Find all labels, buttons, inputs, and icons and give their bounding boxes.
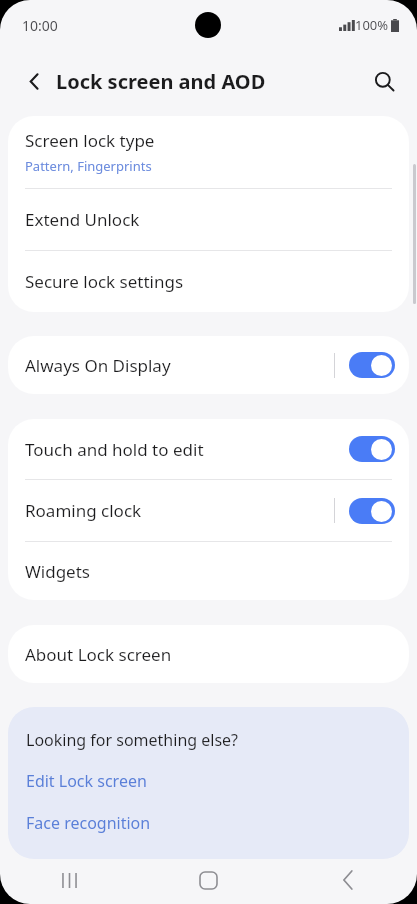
button[interactable]: Back <box>14 61 54 101</box>
staticText: Secure lock settings <box>25 270 184 293</box>
button[interactable]: Toggle <box>349 498 395 524</box>
button[interactable]: Toggle <box>349 436 395 462</box>
button[interactable]: Roaming clock <box>8 480 409 541</box>
staticText: Edit Lock screen <box>26 770 147 792</box>
staticText: Looking for something else? <box>26 729 239 751</box>
button[interactable]: Back <box>278 856 417 904</box>
button[interactable]: Recent apps <box>0 856 139 904</box>
button[interactable]: Screen lock type <box>8 116 409 188</box>
staticText: 100% <box>355 16 389 34</box>
button[interactable]: Toggle <box>349 352 395 378</box>
button[interactable]: Edit Lock screen <box>8 767 409 795</box>
button[interactable]: Home <box>139 856 278 904</box>
staticText: Lock screen and AOD <box>56 68 266 95</box>
staticText: About Lock screen <box>25 643 172 666</box>
staticText: 10:00 <box>22 16 58 35</box>
button[interactable]: Always On Display <box>8 336 409 394</box>
staticText: Extend Unlock <box>25 208 140 231</box>
staticText: Screen lock type <box>25 129 155 152</box>
staticText: Face recognition <box>26 812 151 834</box>
button[interactable]: Touch and hold to edit <box>8 419 409 479</box>
staticText: Widgets <box>25 560 90 583</box>
button[interactable]: Secure lock settings <box>8 251 409 312</box>
staticText: Roaming clock <box>25 499 142 522</box>
staticText: Always On Display <box>25 354 171 377</box>
button[interactable]: About Lock screen <box>8 625 409 683</box>
button[interactable]: Extend Unlock <box>8 189 409 250</box>
button[interactable]: Widgets <box>8 542 409 600</box>
button[interactable]: Face recognition <box>8 809 409 837</box>
button[interactable]: Search <box>363 60 405 102</box>
staticText: Pattern, Fingerprints <box>25 157 152 175</box>
staticText: Touch and hold to edit <box>25 438 204 461</box>
